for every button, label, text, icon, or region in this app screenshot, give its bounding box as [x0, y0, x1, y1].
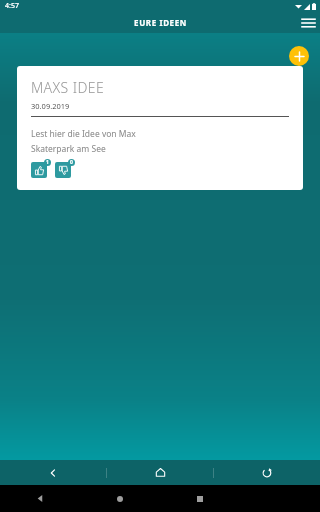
staticText: 0 [70, 159, 73, 166]
button[interactable]: Dislike [55, 159, 75, 179]
staticText: Lest hier die Idee von Max [31, 128, 136, 140]
staticText: MAXS IDEE [31, 78, 105, 97]
button[interactable]: Refresh [214, 460, 320, 485]
staticText: Skaterpark am See [31, 143, 106, 155]
staticText: 1 [46, 159, 49, 166]
staticText: EURE IDEEN [134, 17, 187, 28]
staticText: 30.09.2019 [31, 101, 70, 111]
button[interactable]: Add idea [289, 46, 309, 66]
button[interactable]: Home [107, 460, 213, 485]
button[interactable]: Menu [296, 12, 320, 33]
button[interactable]: Back [0, 460, 106, 485]
staticText: 4:57 [5, 1, 19, 11]
button[interactable]: MAXS IDEE [17, 66, 303, 190]
button[interactable]: Like [31, 159, 51, 179]
